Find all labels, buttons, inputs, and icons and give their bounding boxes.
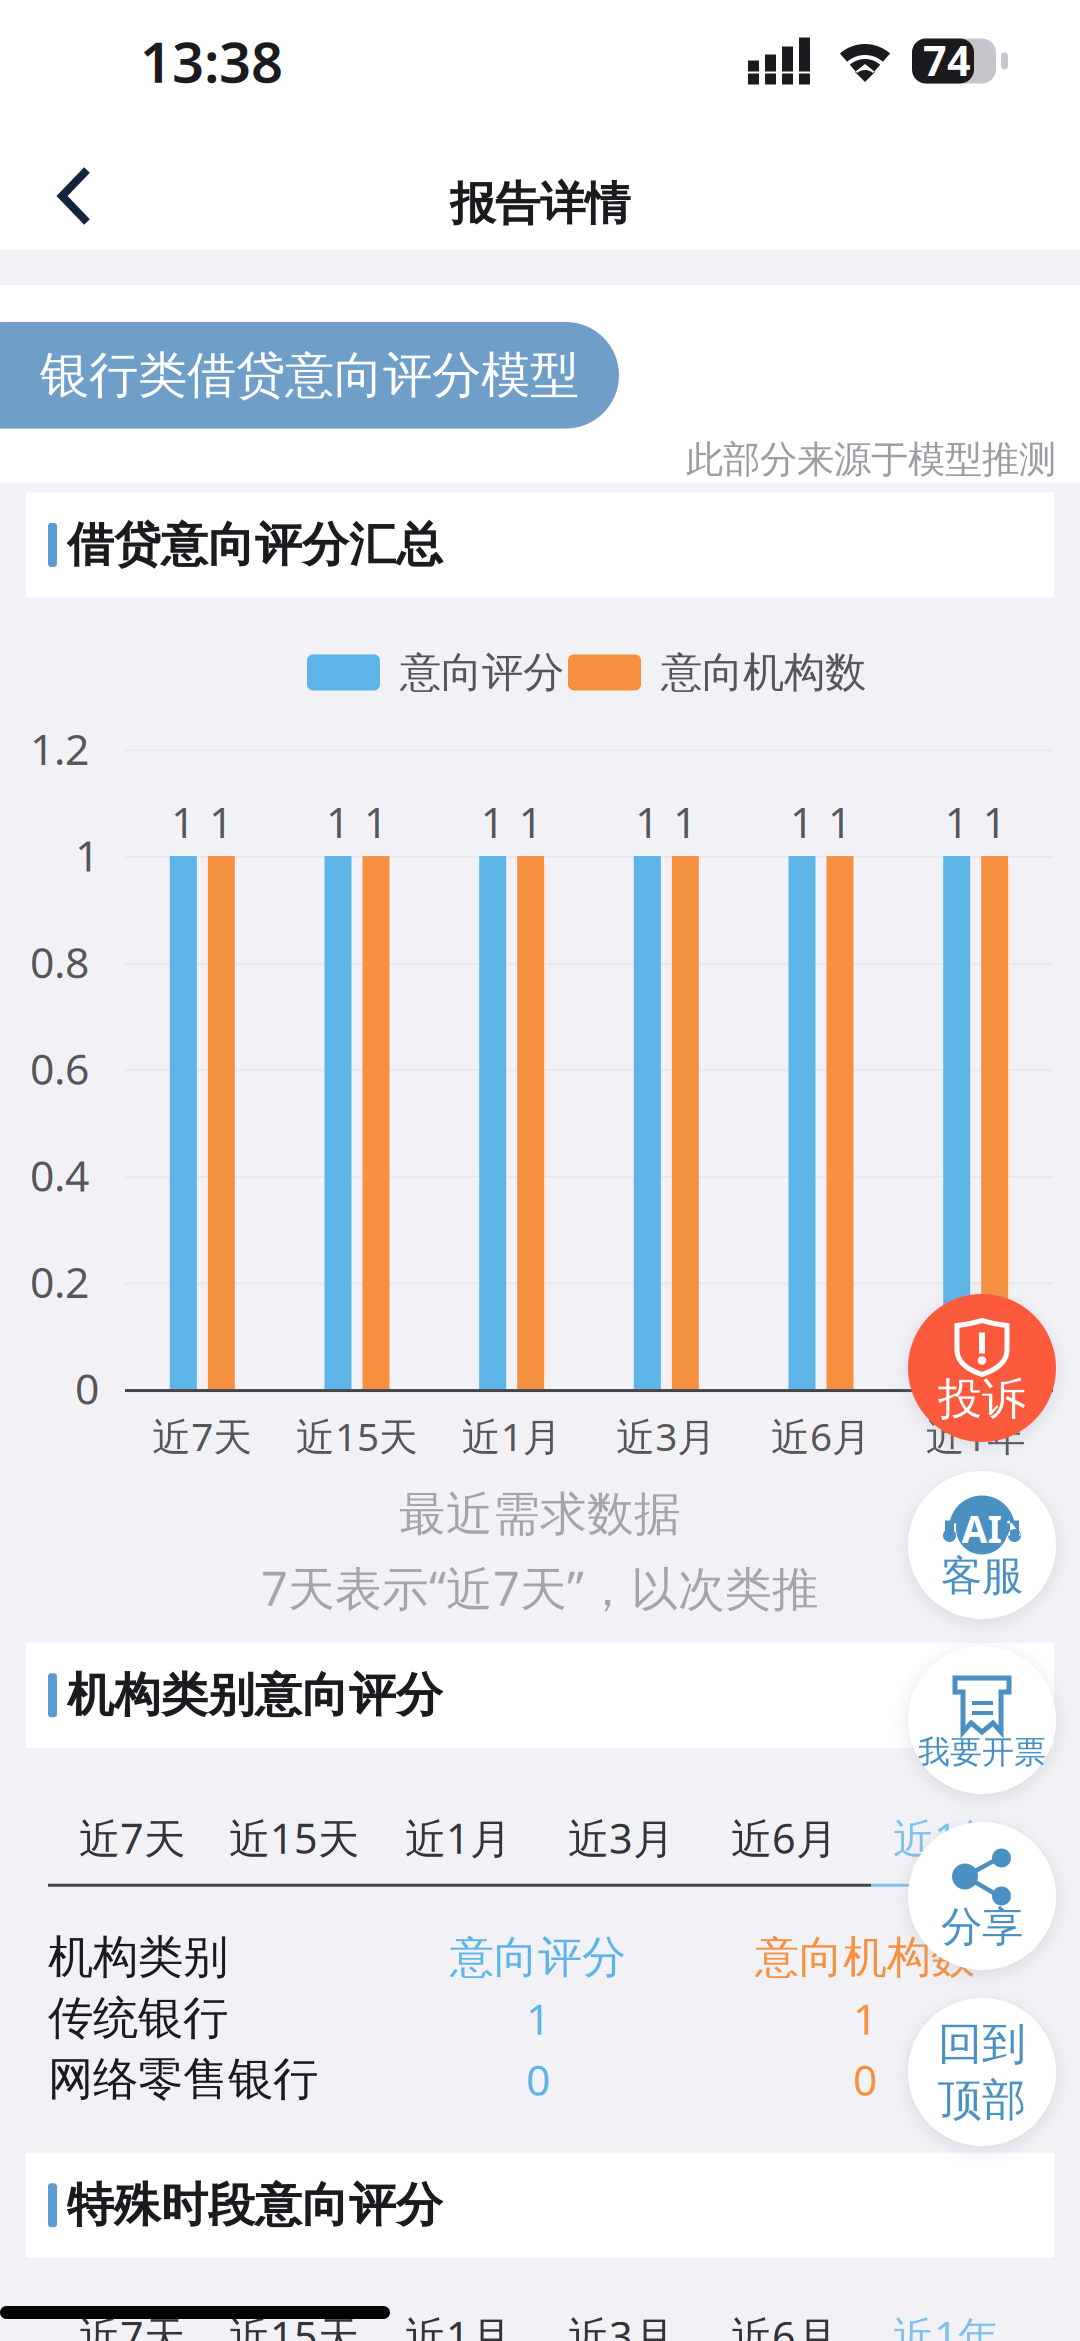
button[interactable]: 返回 [0, 122, 127, 250]
button[interactable]: 近6月 [0, 1792, 160, 1884]
staticText: 顶部 [938, 2073, 1026, 2127]
staticText: 0 [75, 1360, 99, 1416]
staticText: 0.4 [30, 1146, 89, 1203]
button[interactable]: 近15天 [0, 1792, 160, 1884]
button[interactable]: 客服 [908, 1471, 1056, 1619]
button[interactable]: 近15天 [0, 2290, 160, 2341]
staticText: 近1年 [893, 2308, 999, 2341]
staticText: 13:38 [140, 24, 283, 98]
button[interactable]: 近3月 [0, 1792, 160, 1884]
staticText: 客服 [941, 1551, 1023, 1601]
staticText: 1 [209, 795, 233, 849]
staticText: 投诉 [938, 1372, 1026, 1426]
staticText: 分享 [941, 1902, 1023, 1952]
staticText: 传统银行 [48, 1990, 228, 2046]
staticText: 机构类别意向评分 [67, 1667, 443, 1724]
staticText: 0.2 [30, 1253, 89, 1310]
staticText: 近3月 [568, 2308, 674, 2341]
staticText: 意向评分 [400, 647, 564, 698]
staticText: 近15天 [229, 1810, 359, 1865]
staticText: 1 [635, 795, 659, 849]
staticText: 1 [326, 795, 350, 849]
staticText: 报告详情 [450, 176, 630, 232]
staticText: 近6月 [771, 1410, 871, 1462]
staticText: 特殊时段意向评分 [67, 2177, 443, 2234]
staticText: 意向机构数 [755, 1930, 975, 1984]
button[interactable]: 近3月 [0, 2290, 160, 2341]
staticText: 1 [945, 795, 969, 849]
staticText: AI [961, 1504, 1002, 1553]
staticText: 0 [853, 2051, 877, 2108]
button[interactable]: 投诉 [908, 1294, 1056, 1442]
button[interactable]: 近6月 [0, 2290, 160, 2341]
staticText: 此部分来源于模型推测 [686, 437, 1056, 482]
button[interactable]: 近1年 [0, 2290, 160, 2341]
staticText: 近7天 [152, 1410, 252, 1462]
staticText: 近6月 [731, 2308, 837, 2341]
button[interactable]: 我要开票 [908, 1646, 1056, 1794]
staticText: 7天表示“近7天”，以次类推 [261, 1557, 819, 1619]
staticText: 0 [526, 2051, 550, 2108]
staticText: 意向机构数 [661, 647, 866, 698]
button[interactable]: 回到顶部 [908, 1998, 1056, 2146]
staticText: 74 [923, 33, 971, 87]
staticText: 1 [171, 795, 195, 849]
staticText: 1 [526, 1990, 550, 2047]
staticText: 回到 [938, 2017, 1026, 2071]
staticText: 近6月 [731, 1810, 837, 1865]
staticText: 1 [364, 795, 388, 849]
staticText: 我要开票 [918, 1732, 1046, 1772]
staticText: 近1月 [405, 1810, 511, 1865]
staticText: 1 [673, 795, 697, 849]
staticText: 近3月 [568, 1810, 674, 1865]
button[interactable]: 近7天 [0, 1792, 160, 1884]
button[interactable]: 分享 [908, 1822, 1056, 1970]
staticText: 1 [519, 795, 543, 849]
staticText: 1 [75, 827, 99, 883]
staticText: 0.6 [30, 1040, 89, 1097]
staticText: 1 [790, 795, 814, 849]
button[interactable]: 近7天 [0, 2290, 160, 2341]
staticText: 近1年 [926, 1410, 1026, 1462]
staticText: 近1月 [405, 2308, 511, 2341]
staticText: 银行类借贷意向评分模型 [40, 345, 579, 406]
staticText: 1 [853, 1990, 877, 2047]
button[interactable]: 近1月 [0, 2290, 160, 2341]
staticText: 近15天 [229, 2308, 359, 2341]
staticText: 近1年 [893, 1810, 999, 1865]
staticText: 近1月 [462, 1410, 562, 1462]
staticText: 1 [983, 795, 1007, 849]
staticText: 近3月 [616, 1410, 716, 1462]
staticText: 1 [828, 795, 852, 849]
staticText: 最近需求数据 [399, 1485, 681, 1543]
staticText: 意向评分 [450, 1930, 626, 1984]
staticText: 1 [481, 795, 505, 849]
staticText: 近15天 [296, 1410, 418, 1462]
staticText: 近7天 [79, 1810, 185, 1865]
staticText: 机构类别 [48, 1929, 228, 1985]
staticText: 近7天 [79, 2308, 185, 2341]
button[interactable]: 近1年 [0, 1792, 160, 1884]
staticText: 0.8 [30, 933, 89, 990]
staticText: 借贷意向评分汇总 [67, 516, 443, 574]
button[interactable]: 近1月 [0, 1792, 160, 1884]
staticText: 1.2 [30, 720, 89, 777]
staticText: 网络零售银行 [48, 2051, 318, 2107]
